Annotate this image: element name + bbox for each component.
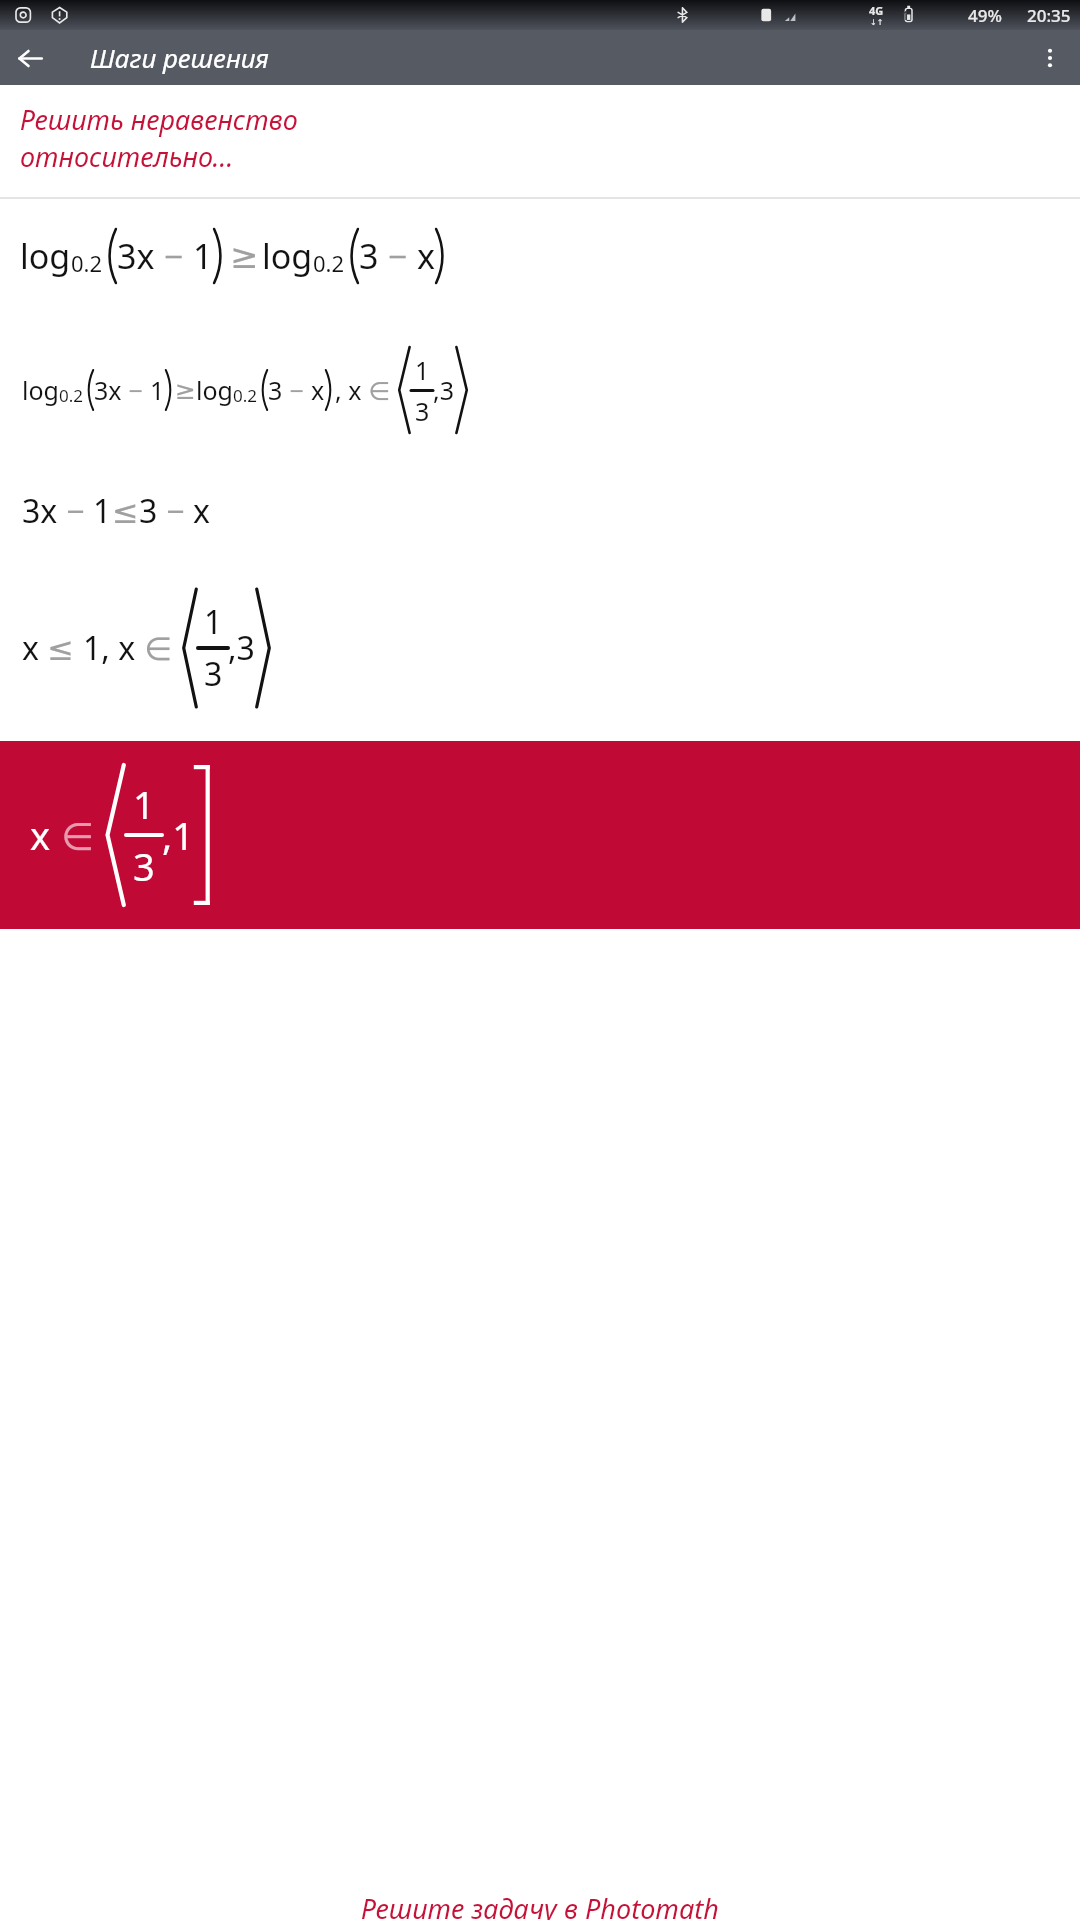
staticText: 3 — [415, 394, 430, 428]
staticText: ≤ — [39, 626, 83, 670]
staticText: 0.2 — [233, 384, 258, 407]
staticText: Решить неравенство — [20, 101, 298, 138]
staticText: − — [58, 489, 93, 533]
staticText: 3x — [22, 489, 58, 533]
staticText: ∈ — [136, 626, 181, 670]
staticText: 1 — [150, 373, 165, 407]
staticText: 3 — [204, 652, 223, 696]
staticText: log — [20, 233, 71, 279]
staticText: 4G — [869, 3, 884, 18]
staticText: x — [22, 626, 39, 670]
staticText: 0.2 — [59, 384, 84, 407]
staticText: − — [155, 233, 193, 279]
staticText: относительно... — [20, 138, 234, 175]
staticText: 49% — [968, 4, 1002, 27]
staticText: 1 — [415, 353, 430, 387]
staticText: x — [30, 809, 51, 861]
staticText: x — [311, 373, 325, 407]
staticText: ≥ — [175, 376, 196, 405]
staticText: ≤ — [112, 493, 139, 530]
staticText: Решите задачу в Photomath — [361, 1890, 719, 1920]
staticText: 3 — [268, 373, 283, 407]
staticText: ∈ — [51, 809, 104, 861]
button[interactable]: 3x — [22, 489, 1080, 533]
staticText: 3 — [133, 840, 155, 892]
staticText: 1 — [193, 233, 213, 279]
staticText: − — [283, 373, 311, 407]
staticText: ,1 — [162, 809, 194, 861]
staticText: 3x — [117, 233, 155, 279]
staticText: ,3 — [433, 373, 455, 407]
staticText: log — [196, 373, 233, 407]
staticText: x — [193, 489, 210, 533]
staticText: 1 — [93, 489, 112, 533]
staticText: log — [22, 373, 59, 407]
button[interactable]: log — [22, 347, 1080, 433]
staticText: ↓↑ — [870, 18, 884, 27]
staticText: − — [379, 233, 417, 279]
staticText: 1, x — [83, 626, 136, 670]
staticText: 20:35 — [1027, 4, 1071, 27]
staticText: 0.2 — [71, 248, 103, 278]
staticText: ∈ — [362, 373, 397, 407]
button[interactable]: Back — [6, 34, 54, 82]
staticText: x — [417, 233, 435, 279]
button[interactable]: x — [0, 741, 1080, 929]
staticText: Шаги решения — [90, 40, 269, 75]
staticText: 1 — [902, 7, 909, 23]
staticText: 1 — [133, 778, 155, 830]
staticText: − — [122, 373, 150, 407]
staticText: 3x — [94, 373, 122, 407]
staticText: 0.2 — [313, 248, 345, 278]
button[interactable]: log — [20, 229, 1080, 283]
button[interactable]: More options — [1026, 34, 1074, 82]
staticText: 3 — [359, 233, 379, 279]
staticText: 3 — [139, 489, 158, 533]
staticText: , x — [335, 373, 362, 407]
staticText: − — [158, 489, 193, 533]
staticText: ,3 — [228, 626, 255, 670]
staticText: ≥ — [230, 236, 259, 276]
button[interactable]: Решите задачу в Photomath — [0, 1890, 1080, 1920]
staticText: 1 — [204, 600, 223, 644]
button[interactable]: x — [22, 589, 1080, 707]
button[interactable]: Решить неравенство — [20, 101, 1080, 175]
staticText: log — [262, 233, 313, 279]
